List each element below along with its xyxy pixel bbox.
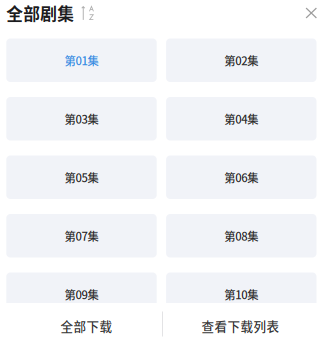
button[interactable]: Close	[297, 3, 317, 22]
button[interactable]: 第01集	[6, 38, 157, 82]
staticText: 第06集	[224, 169, 258, 185]
staticText: 第09集	[64, 286, 98, 302]
button[interactable]: 第06集	[166, 155, 316, 199]
staticText: 第07集	[64, 227, 98, 244]
button[interactable]: 全部下载	[0, 303, 162, 354]
staticText: 第10集	[224, 286, 258, 302]
staticText: 全部下载	[60, 317, 112, 335]
button[interactable]: 第07集	[6, 214, 157, 257]
button[interactable]: 第05集	[6, 155, 157, 199]
staticText: 第02集	[224, 52, 258, 68]
button[interactable]: 第03集	[6, 97, 157, 140]
staticText: 第03集	[64, 110, 98, 127]
staticText: 第04集	[224, 110, 258, 127]
button[interactable]: 第08集	[166, 214, 316, 257]
button[interactable]: 查看下载列表	[0, 303, 319, 354]
staticText: 全部剧集	[6, 1, 74, 25]
button[interactable]: 第02集	[166, 38, 316, 82]
button[interactable]: Sort order	[74, 3, 98, 23]
staticText: 第01集	[64, 52, 98, 68]
button[interactable]: 第10集	[166, 272, 316, 316]
staticText: 查看下载列表	[201, 317, 279, 335]
button[interactable]: 第09集	[6, 272, 157, 316]
staticText: 第05集	[64, 169, 98, 185]
staticText: 第08集	[224, 227, 258, 244]
button[interactable]: 第04集	[166, 97, 316, 140]
